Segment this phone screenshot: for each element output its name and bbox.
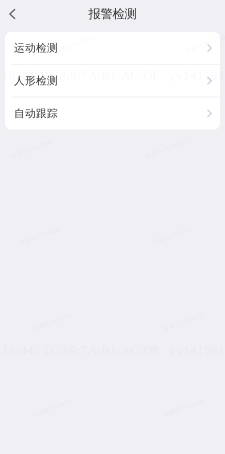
staticText: 人形检测 <box>14 74 58 87</box>
staticText: 投屏码 YV14159 <box>54 40 96 48</box>
button[interactable]: Back <box>0 2 25 26</box>
button[interactable]: 人形检测 <box>5 65 220 97</box>
staticText: 投屏码 YV14159 <box>184 40 225 48</box>
staticText: 报警检测 <box>88 6 136 22</box>
button[interactable]: 自动跟踪 <box>5 97 220 129</box>
staticText: 16:44. 1C:69:7A:B1:AC:DE. yv14159a <box>2 68 224 82</box>
staticText: 运动检测 <box>14 41 58 55</box>
staticText: 自动跟踪 <box>14 107 58 120</box>
button[interactable]: 运动检测 <box>5 32 220 64</box>
